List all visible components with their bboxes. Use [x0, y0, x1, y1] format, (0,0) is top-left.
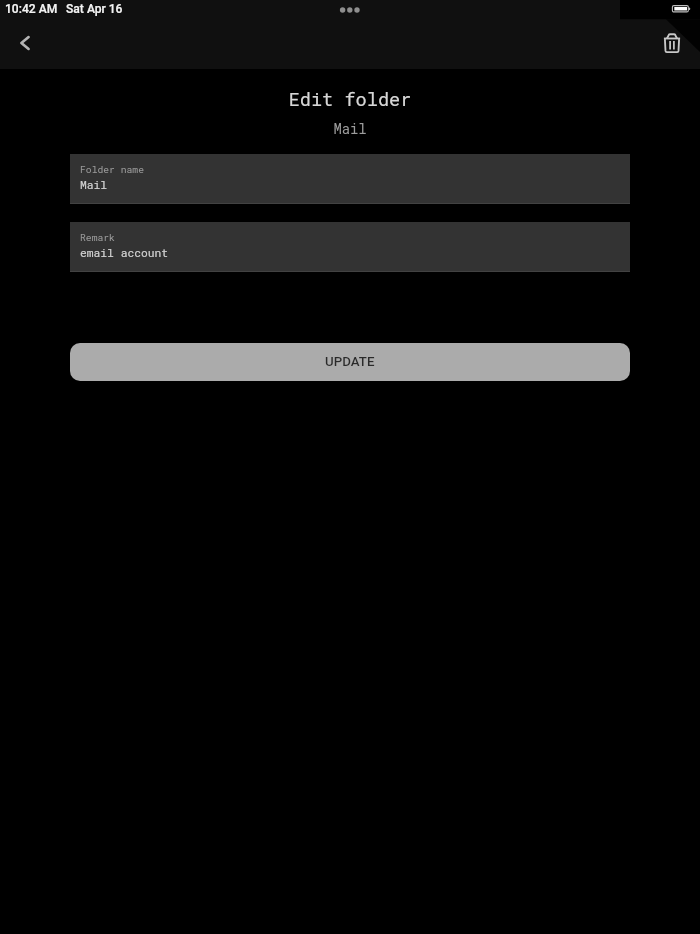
button[interactable]: UPDATE — [70, 343, 630, 381]
staticText: email account — [80, 245, 169, 260]
staticText: Folder name — [80, 163, 144, 176]
staticText: Edit folder — [0, 87, 700, 112]
staticText: Sat Apr 16 — [66, 2, 123, 16]
staticText: 10:42 AM — [5, 2, 58, 16]
staticText: UPDATE — [325, 354, 375, 370]
button[interactable]: Delete folder — [648, 20, 696, 68]
staticText: Mail — [0, 120, 700, 138]
button[interactable]: Folder name — [70, 154, 630, 204]
staticText: Remark — [80, 231, 115, 244]
button[interactable]: Back — [1, 19, 49, 67]
staticText: Mail — [80, 177, 108, 192]
button[interactable]: Remark — [70, 222, 630, 272]
